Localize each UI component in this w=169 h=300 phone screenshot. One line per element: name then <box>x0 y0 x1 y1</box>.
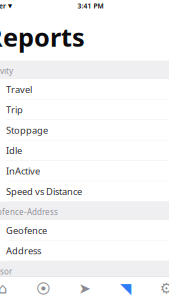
staticText: InActive <box>6 165 40 177</box>
staticText: Sensor <box>0 266 12 277</box>
staticText: Stoppage <box>6 124 48 136</box>
button[interactable]: Navigate <box>68 277 101 299</box>
staticText: Trip <box>6 103 23 116</box>
staticText: Address <box>6 244 41 257</box>
staticText: ◥ <box>120 280 131 297</box>
button[interactable]: ☻ <box>0 241 169 261</box>
staticText: Ignition <box>6 283 40 296</box>
staticText: Reports <box>0 20 85 54</box>
staticText: Idle <box>6 144 22 157</box>
staticText: ⦿ <box>36 281 51 296</box>
button[interactable]: Z <box>0 140 169 161</box>
button[interactable]: Settings <box>150 277 169 299</box>
staticText: Activity <box>0 66 13 76</box>
staticText: ▼ <box>6 3 12 9</box>
button[interactable]: A <box>0 79 169 100</box>
button[interactable]: ◎ <box>0 181 169 202</box>
button[interactable]: Places <box>27 277 60 299</box>
staticText: ⚙ <box>160 280 169 297</box>
button[interactable]: ◎ <box>0 161 169 181</box>
button[interactable]: ♪ <box>0 100 169 120</box>
staticText: ⌂ <box>0 280 7 297</box>
button[interactable]: ✋ <box>0 120 169 140</box>
button[interactable]: Reports <box>109 277 142 299</box>
button[interactable]: ◉ <box>0 280 169 300</box>
staticText: 3:41 PM <box>77 2 103 10</box>
staticText: Geofence <box>6 224 47 236</box>
staticText: Travel <box>6 83 32 95</box>
staticText: Geofence-Address <box>0 207 58 217</box>
staticText: Speed vs Distance <box>6 185 82 197</box>
staticText: Carrier <box>0 2 6 10</box>
button[interactable]: Home <box>0 277 19 299</box>
button[interactable]: ▦ <box>0 220 169 241</box>
staticText: ➤ <box>78 280 90 297</box>
